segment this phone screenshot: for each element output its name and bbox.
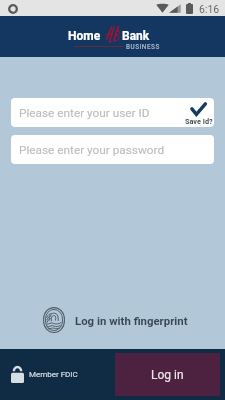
staticText: Bank [122,29,150,43]
other: Notification [8,4,18,14]
button[interactable]: Save Id [184,98,214,127]
staticText: Log in with fingerprint [75,314,188,327]
staticText: Please enter your password [19,143,165,157]
staticText: Log in [151,368,184,382]
button[interactable]: Member FDIC [11,366,78,383]
staticText: Member FDIC [29,370,78,379]
staticText: Save Id? [185,117,213,126]
button[interactable]: Log in with fingerprint [43,307,188,333]
button[interactable]: Please enter your user ID [11,98,214,127]
staticText: 6:16 [199,3,220,15]
staticText: Home [68,29,101,43]
staticText: Please enter your user ID [19,106,150,120]
staticText: BUSINESS [126,43,160,51]
button[interactable]: Log in [115,353,220,396]
button[interactable]: Please enter your password [11,135,214,164]
